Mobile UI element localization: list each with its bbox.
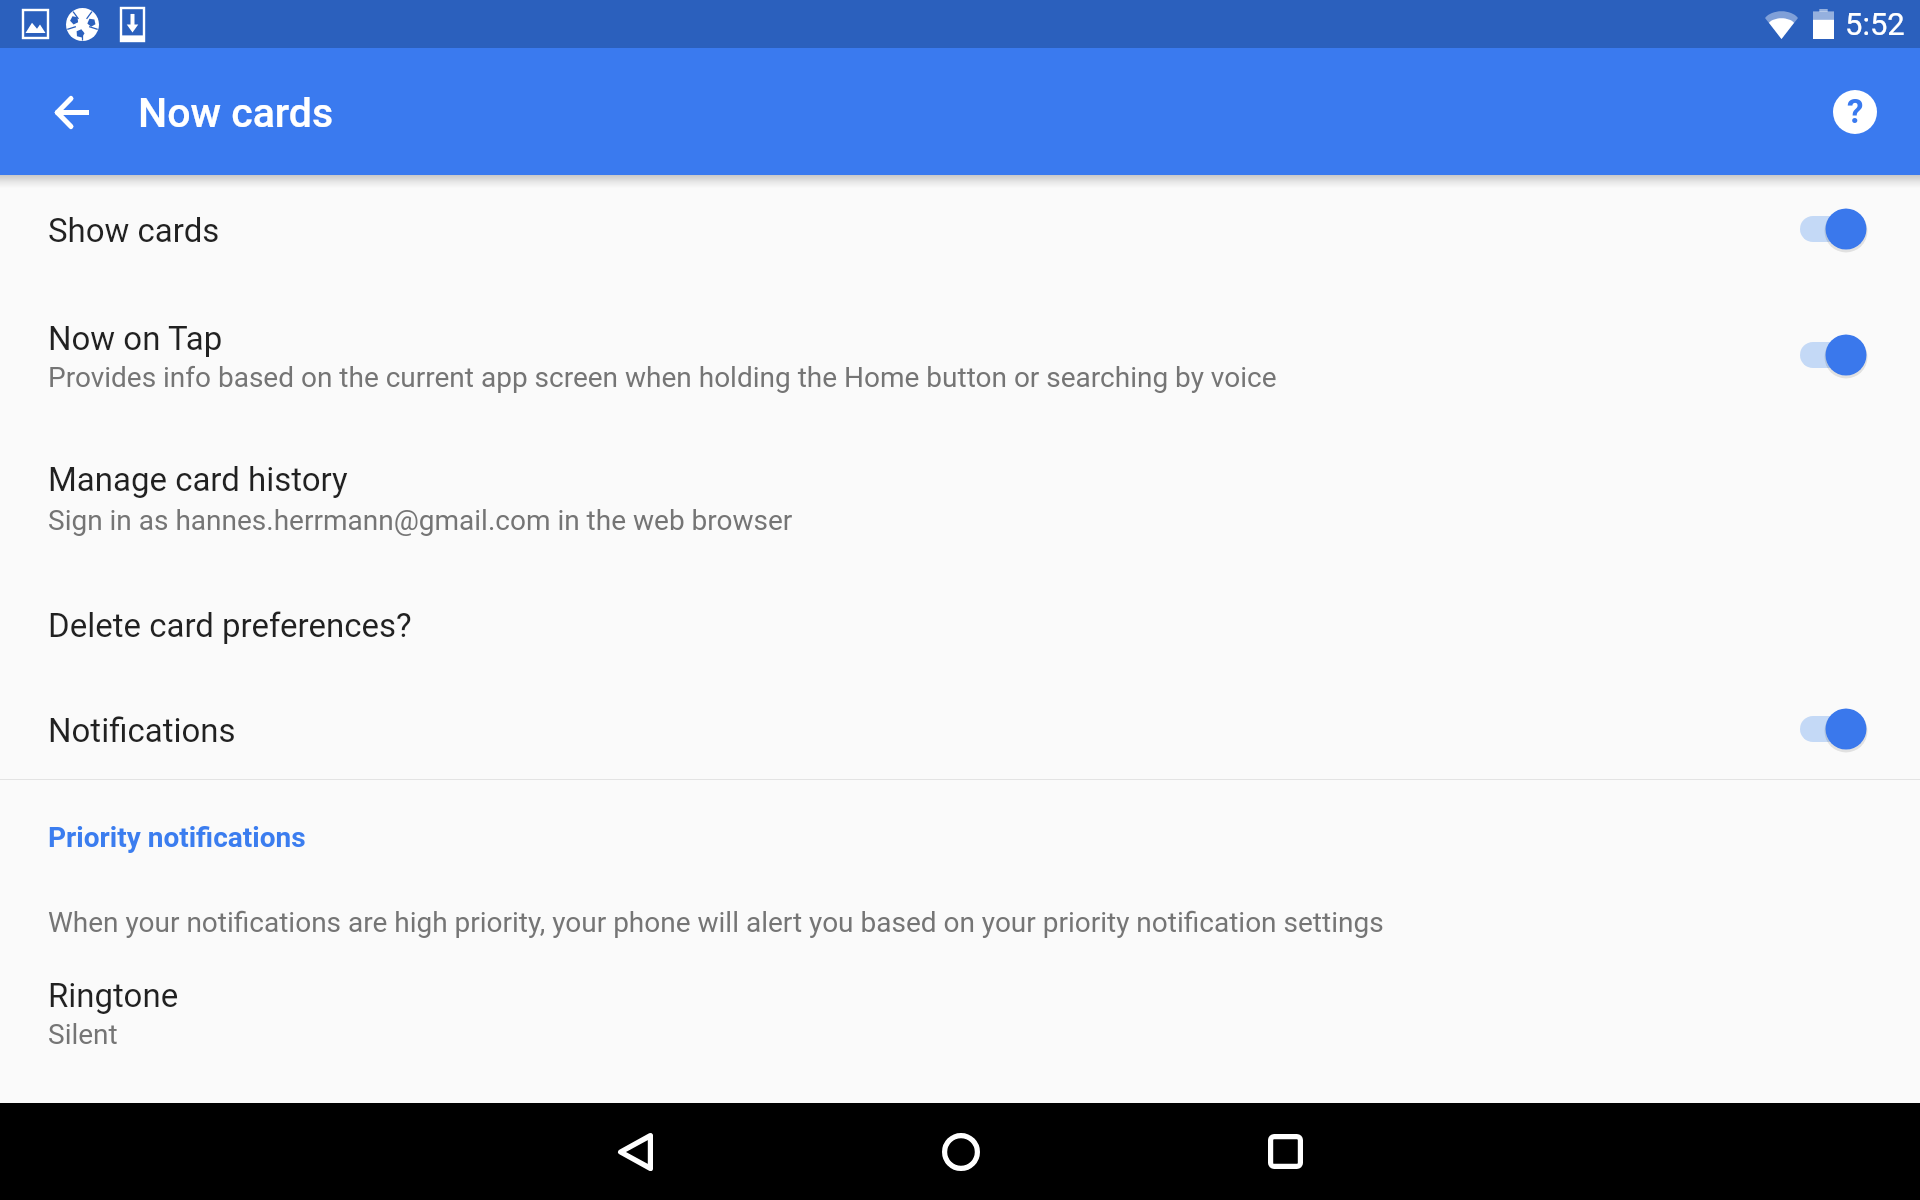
staticText: Manage card history — [48, 460, 348, 499]
staticText: ? — [1847, 92, 1864, 131]
button[interactable]: Now on Tap — [0, 285, 1920, 427]
button[interactable]: Toggle — [1800, 702, 1868, 758]
staticText: 5:52 — [1845, 6, 1905, 42]
button[interactable]: Home — [912, 1103, 1009, 1200]
button[interactable]: Back — [587, 1103, 684, 1200]
button[interactable]: Navigate up — [24, 64, 120, 160]
button[interactable]: Toggle — [1800, 202, 1868, 258]
staticText: Silent — [48, 1018, 118, 1051]
button[interactable]: Priority notifications — [0, 780, 1920, 895]
button[interactable]: Notifications — [0, 681, 1920, 779]
staticText: Sign in as hannes.herrmann@gmail.com in … — [48, 504, 793, 537]
staticText: Now cards — [138, 89, 334, 137]
staticText: Priority notifications — [48, 821, 306, 854]
button[interactable]: Ringtone — [0, 950, 1920, 1076]
button[interactable]: Help — [1807, 64, 1903, 160]
staticText: Ringtone — [48, 976, 179, 1015]
button[interactable]: Manage card history — [0, 427, 1920, 570]
button[interactable]: Delete card preferences? — [0, 570, 1920, 681]
staticText: Show cards — [48, 211, 220, 250]
staticText: Notifications — [48, 711, 236, 750]
button[interactable]: Recent apps — [1237, 1103, 1334, 1200]
staticText: Now on Tap — [48, 319, 223, 358]
staticText: Delete card preferences? — [48, 606, 412, 645]
staticText: Provides info based on the current app s… — [48, 361, 1277, 394]
button[interactable]: Toggle — [1800, 328, 1868, 384]
button[interactable]: Show cards — [0, 175, 1920, 285]
staticText: When your notifications are high priorit… — [48, 906, 1384, 939]
